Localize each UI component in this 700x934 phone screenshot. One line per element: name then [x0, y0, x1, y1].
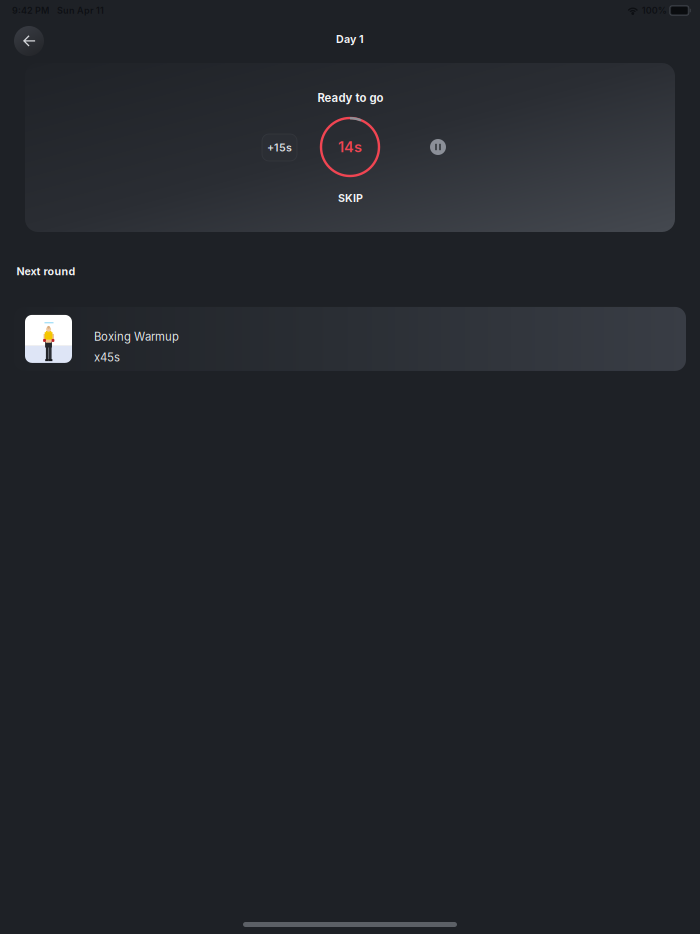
button[interactable]: SKIP [25, 191, 676, 205]
button[interactable]: +15s [262, 134, 297, 161]
staticText: Boxing Warmup [94, 330, 179, 343]
staticText: 9:42 PM [12, 5, 49, 16]
staticText: 100% [642, 5, 667, 16]
button[interactable]: Pause [430, 139, 446, 155]
staticText: x45s [94, 350, 120, 364]
button[interactable]: Boxing Warmup [14, 307, 686, 371]
staticText: Day 1 [336, 32, 364, 45]
staticText: Sun Apr 11 [57, 5, 104, 16]
staticText: Ready to go [317, 91, 383, 105]
staticText: 14s [338, 138, 362, 156]
staticText: Next round [16, 265, 75, 278]
staticText: +15s [267, 141, 292, 154]
button[interactable]: Back [14, 26, 44, 56]
staticText: SKIP [338, 191, 363, 204]
